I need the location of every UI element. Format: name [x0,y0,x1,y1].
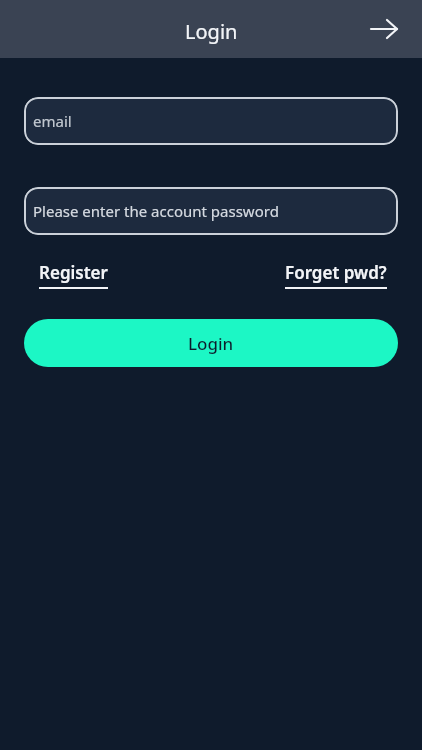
button[interactable]: Register [39,261,108,289]
staticText: Register [39,261,108,284]
staticText: Forget pwd? [285,261,387,284]
button[interactable]: Please enter the account password [24,187,398,235]
button[interactable]: Login [24,319,398,367]
button[interactable]: email [24,97,398,145]
staticText: Login [185,18,238,45]
button[interactable] [368,13,400,45]
staticText: Please enter the account password [33,201,279,221]
staticText: Login [188,332,234,355]
staticText: email [33,111,72,131]
button[interactable]: Forget pwd? [285,261,387,289]
